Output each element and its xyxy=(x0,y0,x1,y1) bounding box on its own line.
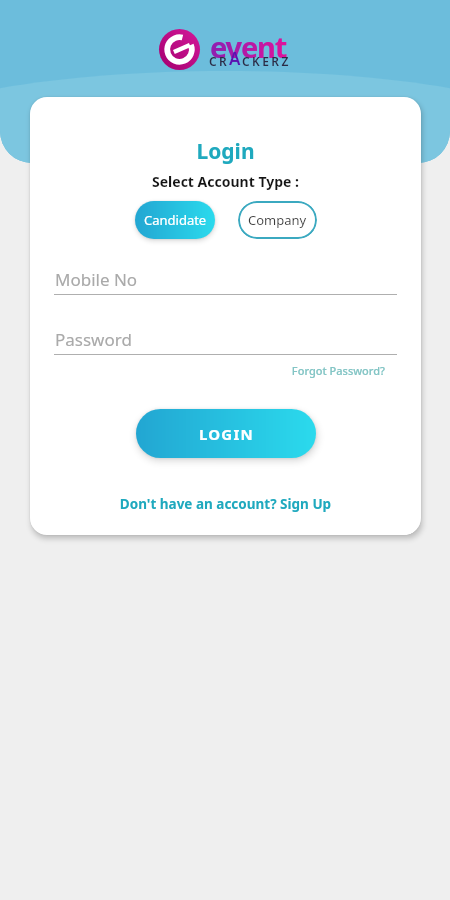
staticText: LOGIN xyxy=(199,424,254,444)
other: Event Crackerz logo xyxy=(159,29,200,70)
staticText: event xyxy=(210,27,287,66)
staticText: Password xyxy=(55,328,132,351)
staticText: CKERZ xyxy=(242,53,291,69)
staticText: A xyxy=(229,47,241,70)
staticText: Login xyxy=(30,137,421,166)
staticText: Select Account Type : xyxy=(30,172,421,191)
staticText: Mobile No xyxy=(55,268,138,291)
button[interactable]: Don't have an account? Sign Up xyxy=(30,495,421,513)
button[interactable]: Forgot Password? xyxy=(30,363,385,378)
staticText: Company xyxy=(248,211,307,229)
button[interactable]: Company xyxy=(238,201,317,239)
button[interactable]: Candidate xyxy=(135,201,215,239)
staticText: Candidate xyxy=(144,211,207,229)
staticText: CR xyxy=(209,53,230,69)
button[interactable]: LOGIN xyxy=(136,409,316,458)
